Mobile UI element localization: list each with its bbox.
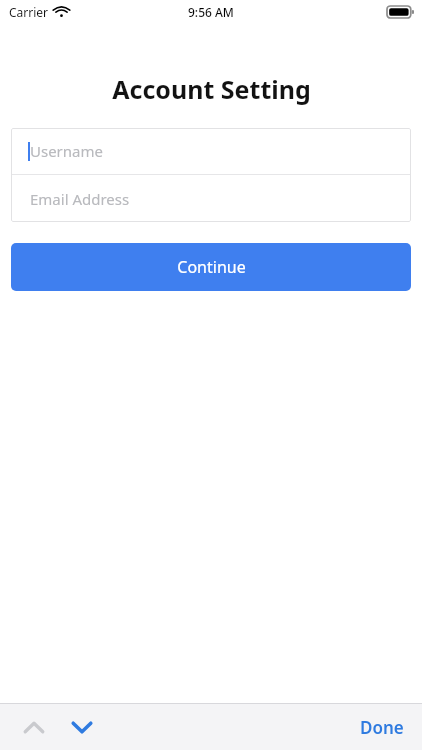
staticText: Username — [30, 141, 103, 161]
staticText: Email Address — [30, 189, 130, 209]
button[interactable]: Previous field — [14, 707, 54, 747]
button[interactable]: Email Address — [11, 175, 411, 222]
button[interactable]: Next field — [62, 707, 102, 747]
button[interactable]: Continue — [11, 243, 411, 291]
staticText: Carrier — [9, 4, 49, 20]
staticText: Done — [360, 716, 404, 739]
staticText: Account Setting — [112, 72, 311, 106]
staticText: 9:56 AM — [188, 4, 234, 20]
staticText: Continue — [177, 256, 246, 278]
button[interactable]: Username — [11, 128, 411, 174]
button[interactable]: Done — [342, 706, 422, 749]
